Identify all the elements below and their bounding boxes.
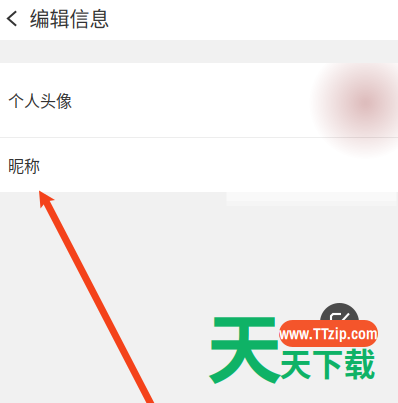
button[interactable]: Compose (320, 303, 359, 342)
staticText: 天下载 (279, 339, 375, 385)
staticText: 编辑信息 (29, 3, 109, 32)
button[interactable]: 个人头像 (0, 63, 398, 137)
button[interactable]: 昵称 (0, 138, 398, 192)
staticText: 个人头像 (8, 88, 72, 112)
staticText: 天 (206, 289, 282, 399)
staticText: 昵称 (8, 153, 40, 177)
staticText: www.TTzip.com (279, 323, 378, 344)
button[interactable]: Back (0, 0, 25, 37)
